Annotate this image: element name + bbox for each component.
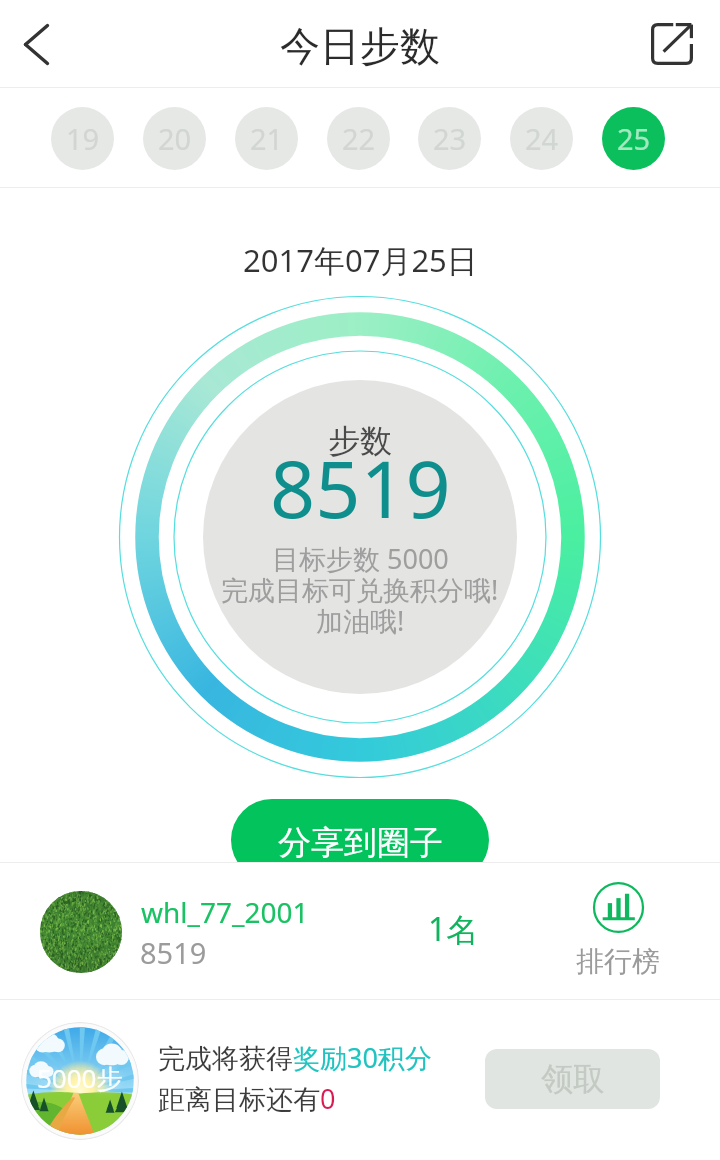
staticText: 排行榜 xyxy=(576,944,660,979)
staticText: 目标步数 5000 xyxy=(272,540,449,577)
button[interactable]: 24 xyxy=(510,107,573,170)
button[interactable]: 领取 xyxy=(485,1049,660,1109)
button[interactable]: 21 xyxy=(235,107,298,170)
staticText: 分享到圈子 xyxy=(278,822,443,864)
button[interactable]: Share xyxy=(638,9,706,79)
staticText: 23 xyxy=(433,119,467,158)
button[interactable]: 25 xyxy=(602,107,665,170)
button[interactable]: whl_77_2001 xyxy=(0,863,720,1000)
staticText: whl_77_2001 xyxy=(141,893,309,931)
staticText: 今日步数 xyxy=(280,21,440,71)
button[interactable]: 20 xyxy=(143,107,206,170)
staticText: 8519 xyxy=(270,434,451,542)
button[interactable]: 19 xyxy=(51,107,114,170)
staticText: 加油哦! xyxy=(316,602,405,639)
staticText: 8519 xyxy=(140,933,207,972)
staticText: 2017年07月25日 xyxy=(243,239,478,281)
staticText: 22 xyxy=(342,119,376,158)
button[interactable]: 22 xyxy=(327,107,390,170)
button[interactable]: Back xyxy=(6,10,66,78)
staticText: 1名 xyxy=(428,907,479,951)
button[interactable]: 分享到圈子 xyxy=(231,799,489,881)
staticText: 20 xyxy=(158,119,192,158)
staticText: 完成目标可兑换积分哦! xyxy=(221,571,499,608)
button[interactable]: 排行榜 xyxy=(568,882,668,979)
staticText: 完成将获得奖励30积分 xyxy=(158,1039,432,1076)
staticText: 25 xyxy=(617,119,651,158)
staticText: 19 xyxy=(66,119,100,158)
button[interactable]: 23 xyxy=(418,107,481,170)
staticText: 领取 xyxy=(541,1059,605,1099)
staticText: 距离目标还有0 xyxy=(158,1080,336,1117)
staticText: 5000步 xyxy=(37,1060,123,1096)
staticText: 步数 xyxy=(328,421,392,461)
staticText: 24 xyxy=(525,119,559,158)
staticText: 21 xyxy=(250,119,284,158)
